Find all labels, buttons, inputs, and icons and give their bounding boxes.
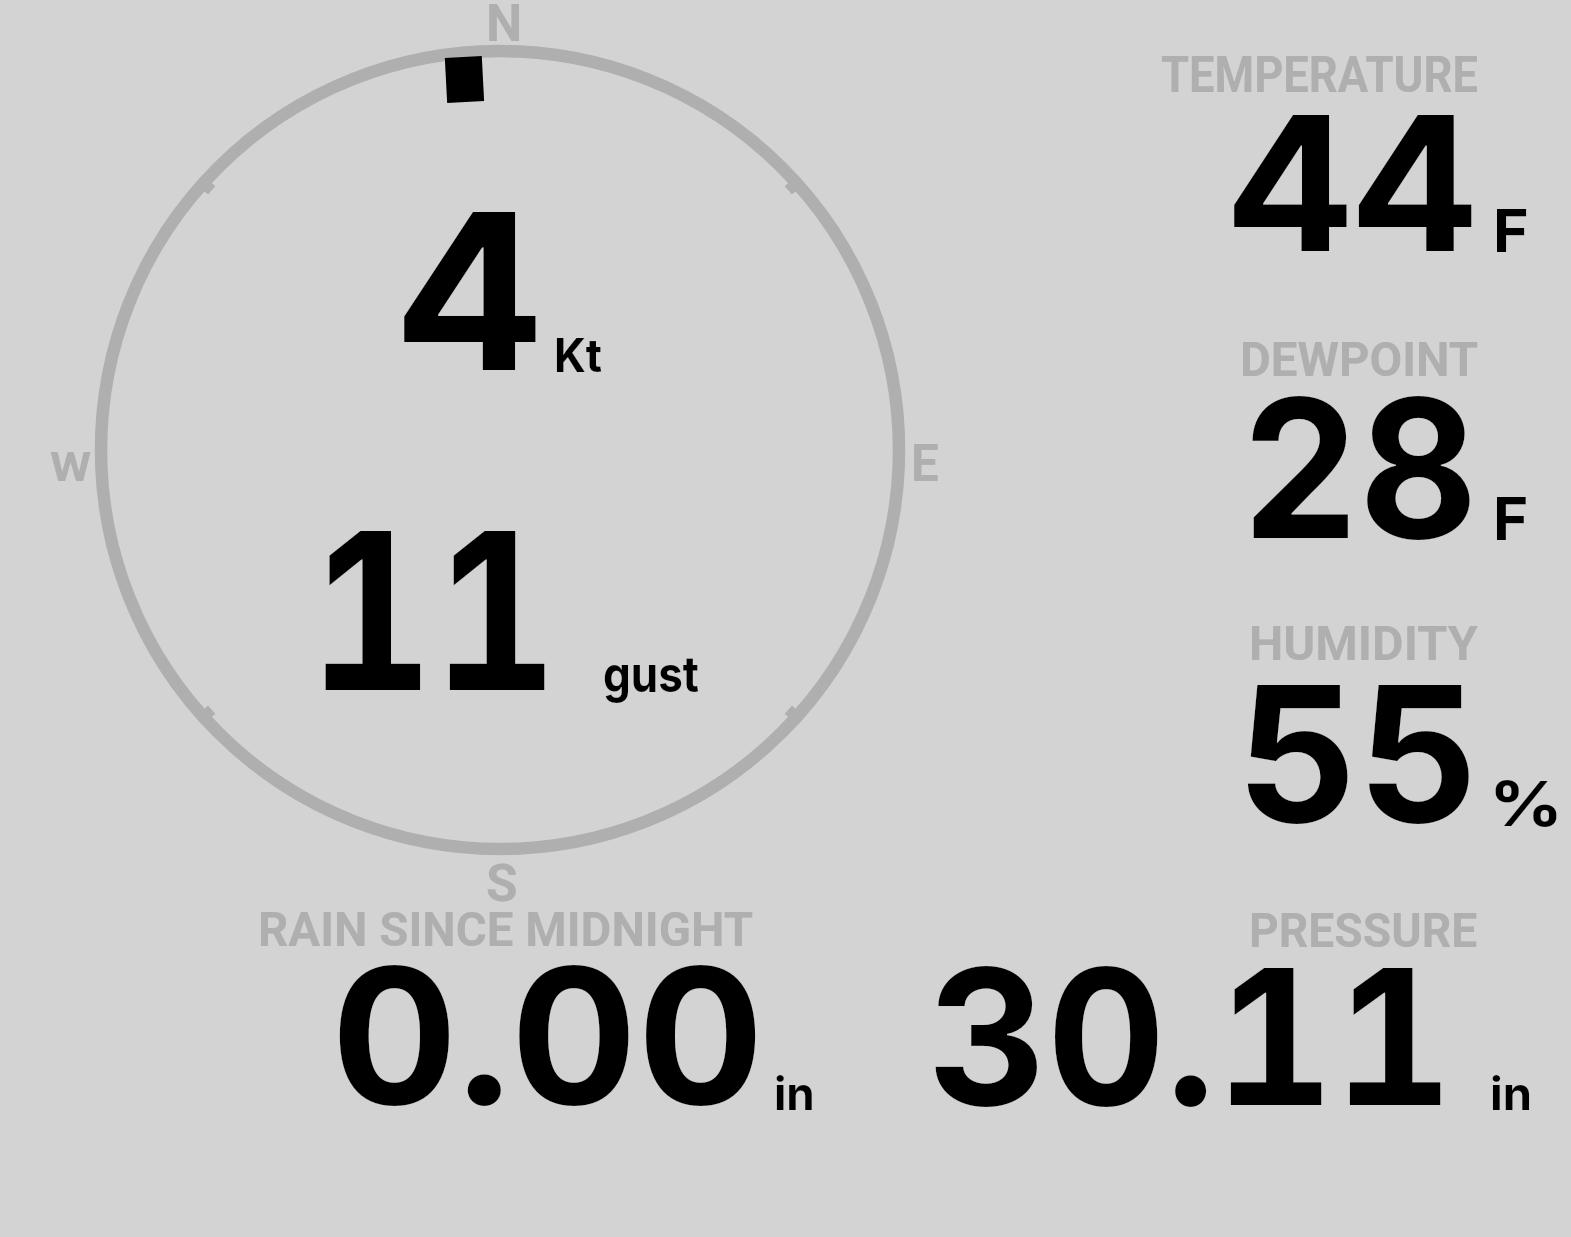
staticText: 0.00: [331, 921, 765, 1149]
staticText: %: [1489, 767, 1564, 841]
staticText: 11: [309, 479, 558, 743]
button[interactable]: Wind speed and direction: [90, 40, 910, 860]
staticText: F: [1493, 482, 1528, 554]
staticText: PRESSURE: [1249, 902, 1478, 958]
staticText: 55: [1237, 639, 1480, 867]
button[interactable]: Temperature 44 F: [1150, 40, 1570, 270]
staticText: Kt: [554, 327, 602, 383]
staticText: 28: [1241, 352, 1478, 585]
staticText: HUMIDITY: [1249, 615, 1478, 672]
staticText: in: [1490, 1066, 1532, 1121]
button[interactable]: Dewpoint 28 F: [1150, 325, 1570, 555]
button[interactable]: Rain since midnight 0.00 in: [250, 895, 830, 1125]
staticText: S: [486, 853, 518, 913]
button[interactable]: Pressure 30.11 in: [900, 895, 1560, 1125]
staticText: 44: [1228, 69, 1478, 296]
staticText: RAIN SINCE MIDNIGHT: [258, 902, 754, 958]
staticText: 4: [397, 160, 544, 422]
staticText: in: [774, 1066, 815, 1121]
staticText: 30.11: [928, 922, 1453, 1150]
staticText: E: [911, 433, 939, 493]
staticText: W: [50, 443, 92, 491]
staticText: TEMPERATURE: [1161, 46, 1478, 104]
staticText: N: [486, 0, 523, 53]
staticText: F: [1493, 194, 1529, 266]
staticText: DEWPOINT: [1240, 332, 1479, 388]
button[interactable]: Humidity 55 percent: [1150, 610, 1570, 840]
staticText: gust: [603, 644, 699, 704]
